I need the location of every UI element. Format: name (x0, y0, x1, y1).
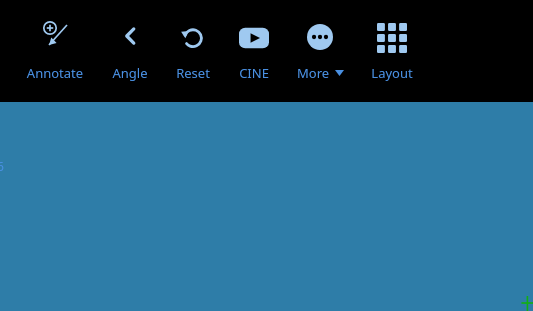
staticText: Reset (167, 64, 219, 82)
button[interactable]: More (289, 14, 351, 86)
staticText: More (297, 64, 330, 82)
button[interactable]: Annotate (18, 14, 92, 86)
button[interactable]: Angle (104, 14, 156, 86)
staticText: Angle (104, 64, 156, 82)
button[interactable]: Layout (362, 14, 422, 86)
staticText: CINE (228, 64, 280, 82)
staticText: Layout (362, 64, 422, 82)
staticText: 6 (0, 158, 4, 174)
button[interactable]: Reset (167, 14, 219, 86)
staticText: Annotate (18, 64, 92, 82)
button[interactable]: CINE (228, 14, 280, 86)
